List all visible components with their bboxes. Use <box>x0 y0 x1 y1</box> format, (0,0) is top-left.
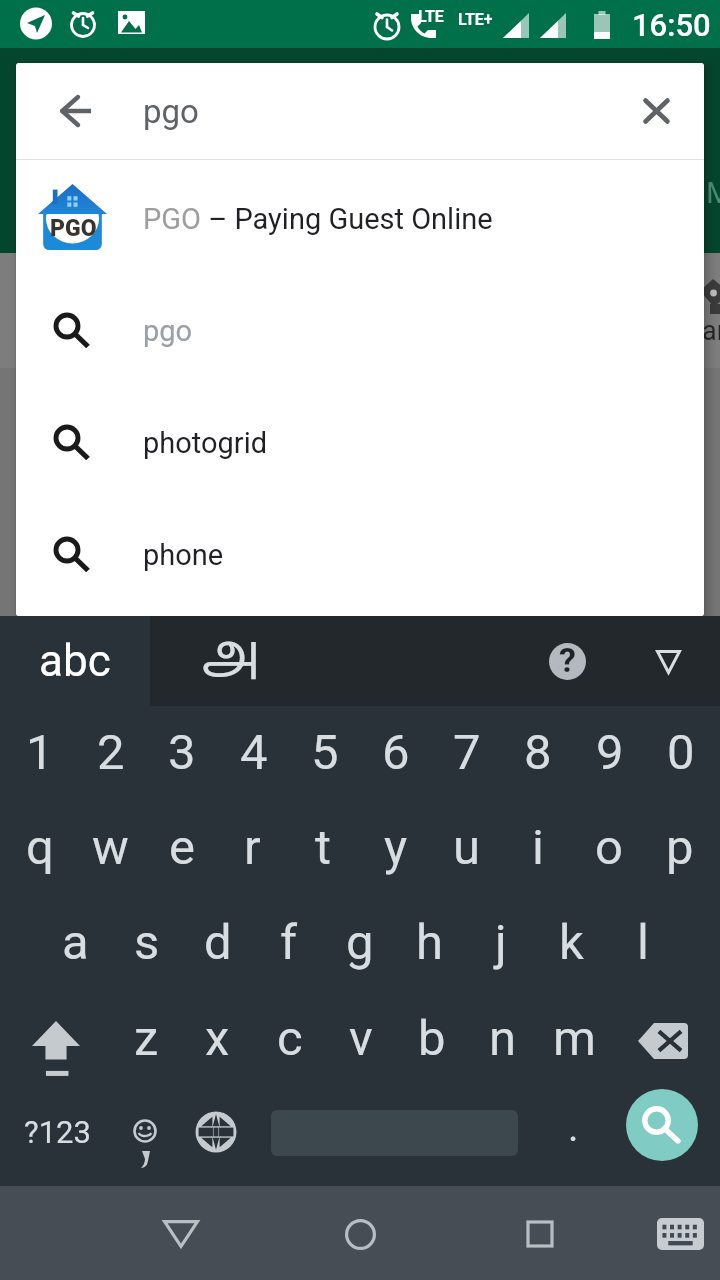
button[interactable]: n <box>467 991 538 1085</box>
staticText: PGO – Paying Guest Online <box>143 202 493 236</box>
button[interactable]: phone <box>16 496 704 608</box>
button[interactable]: Help <box>531 625 603 697</box>
staticText: b <box>418 1010 446 1067</box>
button[interactable]: Back <box>28 63 124 159</box>
staticText: LTE+ <box>458 10 493 29</box>
button[interactable]: a <box>40 895 111 989</box>
button[interactable]: 2 <box>75 705 146 799</box>
button[interactable]: Shift <box>4 994 108 1089</box>
staticText: c <box>277 1010 303 1067</box>
button[interactable]: 9 <box>574 705 645 799</box>
staticText: abc <box>39 635 111 687</box>
staticText: d <box>204 914 232 971</box>
button[interactable]: f <box>253 895 324 989</box>
staticText: w <box>92 819 129 876</box>
staticText: g <box>346 914 374 971</box>
staticText: y <box>384 819 408 876</box>
button[interactable]: 3 <box>146 705 217 799</box>
staticText: j <box>495 914 507 971</box>
staticText: . <box>568 1104 579 1151</box>
button[interactable]: Hide keyboard <box>632 626 704 698</box>
staticText: f <box>280 914 298 971</box>
staticText: அ <box>202 626 261 690</box>
button[interactable]: z <box>111 991 182 1085</box>
button[interactable]: Search <box>626 1089 698 1161</box>
staticText: 2 <box>97 724 125 781</box>
staticText: pgo <box>143 92 199 131</box>
staticText: 8 <box>524 724 552 781</box>
button[interactable]: p <box>644 800 715 894</box>
staticText: e <box>169 819 195 876</box>
button[interactable]: y <box>360 800 431 894</box>
button[interactable]: Recents <box>500 1194 580 1274</box>
button[interactable]: PGO <box>16 160 704 272</box>
button[interactable]: Home <box>320 1194 400 1274</box>
button[interactable]: i <box>502 800 573 894</box>
staticText: n <box>489 1010 517 1067</box>
staticText: PGO <box>50 215 97 242</box>
button[interactable]: u <box>431 800 502 894</box>
button[interactable]: Change language <box>180 1089 252 1174</box>
button[interactable]: m <box>539 991 610 1085</box>
button[interactable]: 6 <box>360 705 431 799</box>
button[interactable]: ?123 <box>4 1089 110 1174</box>
button[interactable]: l <box>607 895 678 989</box>
button[interactable]: w <box>75 800 146 894</box>
staticText: pgo <box>143 314 193 348</box>
staticText: photogrid <box>143 426 268 460</box>
staticText: 1 <box>26 724 54 781</box>
staticText: z <box>134 1010 159 1067</box>
staticText: phone <box>143 538 224 572</box>
button[interactable]: h <box>394 895 465 989</box>
button[interactable]: o <box>573 800 644 894</box>
button[interactable]: s <box>111 895 182 989</box>
button[interactable]: x <box>182 991 253 1085</box>
button[interactable]: v <box>325 991 396 1085</box>
button[interactable]: e <box>146 800 217 894</box>
staticText: x <box>205 1010 230 1067</box>
button[interactable]: அ <box>150 616 300 706</box>
button[interactable]: d <box>182 895 253 989</box>
staticText: h <box>416 914 443 971</box>
button[interactable]: q <box>4 800 75 894</box>
button[interactable]: g <box>324 895 395 989</box>
button[interactable]: j <box>465 895 536 989</box>
button[interactable]: photogrid <box>16 384 704 496</box>
staticText: ? <box>559 640 576 680</box>
button[interactable]: pgo <box>16 272 704 384</box>
staticText: p <box>666 819 694 876</box>
staticText: ?123 <box>24 1114 91 1150</box>
staticText: r <box>244 819 261 876</box>
button[interactable]: 0 <box>645 705 716 799</box>
button[interactable]: abc <box>0 616 150 706</box>
button[interactable]: Backspace <box>612 994 716 1089</box>
staticText: My apps <box>706 175 720 210</box>
staticText: q <box>26 819 54 876</box>
button[interactable]: 1 <box>4 705 75 799</box>
button[interactable]: . <box>540 1089 606 1174</box>
button[interactable]: t <box>288 800 359 894</box>
button[interactable]: 4 <box>218 705 289 799</box>
button[interactable]: Emoji <box>110 1089 180 1174</box>
staticText: m <box>553 1010 596 1067</box>
button[interactable]: 8 <box>502 705 573 799</box>
staticText: 16:50 <box>632 7 711 43</box>
button[interactable]: Back <box>141 1194 221 1274</box>
button[interactable]: r <box>217 800 288 894</box>
button[interactable]: 7 <box>431 705 502 799</box>
staticText: v <box>349 1010 373 1067</box>
button[interactable]: k <box>536 895 607 989</box>
button[interactable]: c <box>254 991 325 1085</box>
staticText: o <box>595 819 623 876</box>
staticText: i <box>532 819 544 876</box>
staticText: 6 <box>382 724 410 781</box>
staticText: k <box>559 914 584 971</box>
button[interactable]: Switch keyboard <box>640 1194 720 1274</box>
staticText: 0 <box>667 724 695 781</box>
button[interactable]: Clear <box>608 63 704 159</box>
staticText: s <box>134 914 160 971</box>
button[interactable]: 5 <box>289 705 360 799</box>
button[interactable]: b <box>396 991 467 1085</box>
staticText: 9 <box>596 724 624 781</box>
